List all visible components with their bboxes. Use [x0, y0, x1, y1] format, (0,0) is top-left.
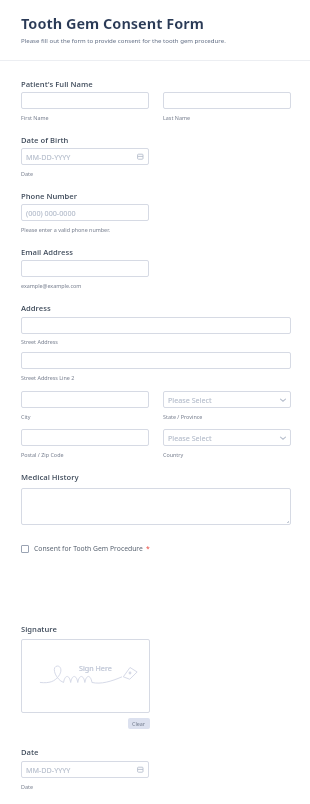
staticText: Email Address [21, 247, 73, 257]
other: Open dropdown [280, 435, 286, 441]
button[interactable] [21, 488, 291, 525]
staticText: Phone Number [21, 191, 78, 201]
staticText: * [146, 544, 150, 553]
button[interactable]: Clear [128, 718, 150, 729]
staticText: Sign Here [79, 663, 112, 673]
staticText: Please fill out the form to provide cons… [21, 36, 226, 44]
button[interactable]: Consent for Tooth Gem Procedure [21, 544, 150, 553]
staticText: Date [21, 747, 39, 757]
staticText: example@example.com [21, 282, 82, 289]
staticText: Street Address Line 2 [21, 374, 75, 381]
staticText: Street Address [21, 338, 58, 345]
staticText: Date [21, 170, 33, 177]
staticText: Please Select [168, 433, 212, 443]
staticText: Postal / Zip Code [21, 451, 64, 458]
button[interactable] [21, 92, 149, 109]
button[interactable] [21, 317, 291, 334]
staticText: Consent for Tooth Gem Procedure [34, 544, 143, 553]
staticText: Clear [132, 720, 146, 727]
button[interactable] [21, 429, 149, 446]
button[interactable]: MM-DD-YYYY [21, 761, 149, 778]
staticText: Last Name [163, 114, 190, 121]
staticText: Tooth Gem Consent Form [21, 13, 204, 33]
staticText: Signature [21, 624, 57, 634]
button[interactable] [21, 391, 149, 408]
button[interactable] [163, 92, 291, 109]
button[interactable] [21, 352, 291, 369]
staticText: Please Select [168, 395, 212, 405]
staticText: Patient's Full Name [21, 79, 93, 89]
staticText: Address [21, 303, 51, 313]
staticText: MM-DD-YYYY [26, 152, 71, 162]
staticText: Country [163, 451, 184, 458]
staticText: City [21, 413, 31, 420]
other: Pick date [137, 766, 144, 773]
button[interactable]: Signature pad, sign here [21, 639, 150, 713]
other: Pick date [137, 153, 144, 160]
staticText: Medical History [21, 472, 79, 482]
button[interactable]: Please Select [163, 391, 291, 408]
button[interactable]: (000) 000-0000 [21, 204, 149, 221]
button[interactable]: MM-DD-YYYY [21, 148, 149, 165]
staticText: Please enter a valid phone number. [21, 226, 110, 233]
button[interactable] [21, 260, 149, 277]
staticText: MM-DD-YYYY [26, 765, 71, 775]
staticText: First Name [21, 114, 49, 121]
staticText: Date of Birth [21, 135, 69, 145]
other: Open dropdown [280, 397, 286, 403]
staticText: Date [21, 783, 33, 790]
staticText: State / Province [163, 413, 203, 420]
staticText: (000) 000-0000 [26, 208, 76, 218]
button[interactable]: Please Select [163, 429, 291, 446]
